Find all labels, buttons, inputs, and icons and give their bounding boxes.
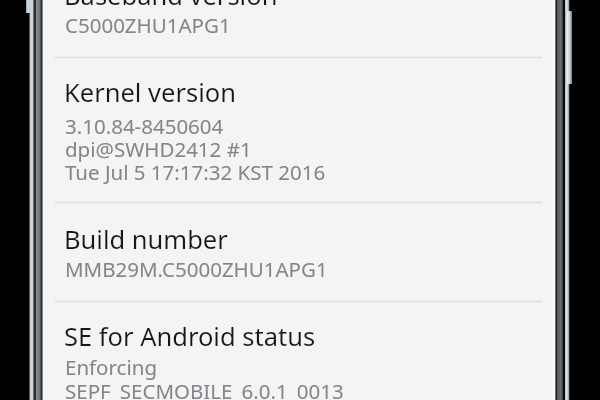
button[interactable]: Kernel version	[44, 59, 553, 201]
staticText: Enforcing	[65, 353, 157, 381]
staticText: Kernel version	[64, 75, 236, 110]
button[interactable]: Build number	[44, 204, 553, 300]
button[interactable]: SE for Android status	[44, 303, 553, 400]
staticText: MMB29M.C5000ZHU1APG1	[65, 255, 328, 283]
staticText: Baseband version	[64, 0, 278, 13]
button[interactable]: Baseband version	[44, 0, 553, 56]
staticText: Build number	[64, 222, 228, 257]
staticText: Tue Jul 5 17:17:32 KST 2016	[65, 158, 326, 186]
staticText: SEPF_SECMOBILE_6.0.1_0013	[65, 377, 344, 400]
staticText: dpi@SWHD2412 #1	[65, 135, 252, 163]
staticText: 3.10.84-8450604	[65, 112, 224, 140]
staticText: SE for Android status	[64, 319, 316, 354]
staticText: C5000ZHU1APG1	[65, 11, 231, 39]
